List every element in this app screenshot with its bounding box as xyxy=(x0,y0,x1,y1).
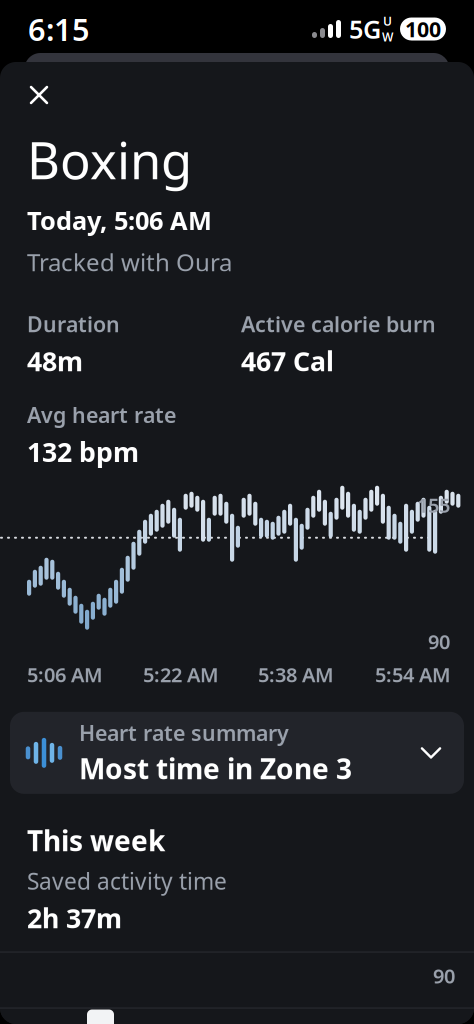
staticText: Boxing xyxy=(27,126,192,193)
staticText: Saved activity time xyxy=(27,866,227,896)
staticText: 5:22 AM xyxy=(143,661,219,688)
staticText: 100 xyxy=(405,15,441,43)
staticText: This week xyxy=(27,822,165,859)
staticText: Avg heart rate xyxy=(27,400,176,429)
staticText: W xyxy=(382,29,393,45)
staticText: 467 Cal xyxy=(241,343,334,378)
staticText: 48m xyxy=(27,343,83,378)
staticText: 90 xyxy=(428,628,450,655)
button[interactable]: Close xyxy=(16,72,62,118)
staticText: 90 xyxy=(433,962,455,989)
staticText: Tracked with Oura xyxy=(27,246,232,278)
staticText: 5:38 AM xyxy=(258,661,334,688)
staticText: Most time in Zone 3 xyxy=(79,750,352,787)
staticText: 5G xyxy=(349,12,381,46)
staticText: U xyxy=(383,13,392,29)
staticText: 2h 37m xyxy=(27,900,122,935)
staticText: 155 xyxy=(417,492,450,518)
staticText: 5:54 AM xyxy=(375,661,451,688)
staticText: Today, 5:06 AM xyxy=(27,203,212,237)
staticText: 5:06 AM xyxy=(27,661,103,688)
staticText: 132 bpm xyxy=(27,434,139,469)
staticText: Active calorie burn xyxy=(241,310,436,338)
staticText: Duration xyxy=(27,310,120,338)
staticText: Heart rate summary xyxy=(79,719,289,747)
staticText: 6:15 xyxy=(28,9,90,49)
button[interactable]: Heart rate summary xyxy=(10,712,464,794)
